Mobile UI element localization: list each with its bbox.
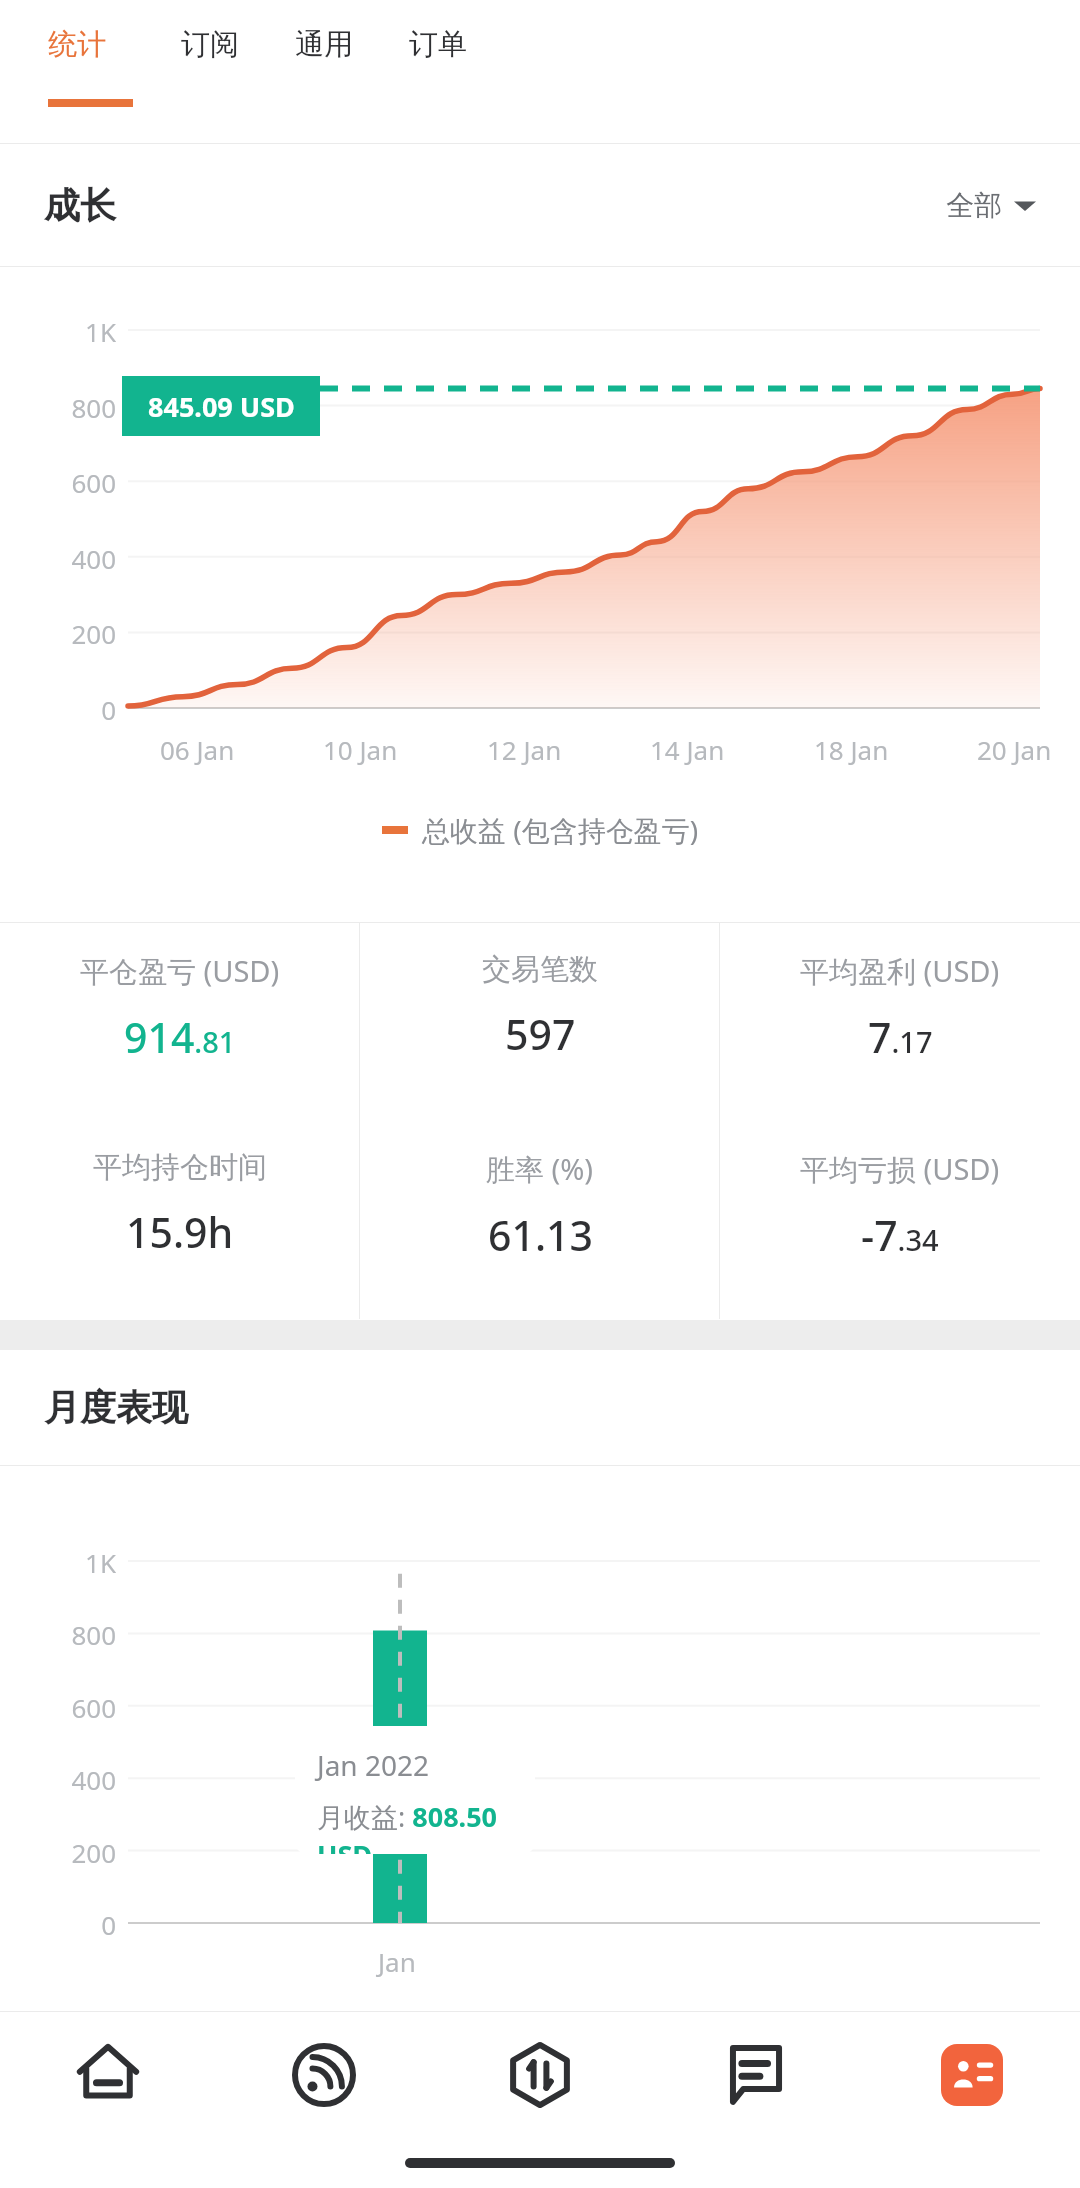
- staticText: 胜率 (%): [486, 1149, 594, 1189]
- staticText: 0: [30, 692, 116, 727]
- button[interactable]: 全部: [946, 188, 1036, 223]
- button[interactable]: Messages: [648, 2012, 864, 2137]
- staticText: 400: [30, 1762, 116, 1797]
- staticText: 月度表现: [44, 1385, 188, 1430]
- staticText: 交易笔数: [482, 951, 598, 988]
- staticText: 12 Jan: [487, 732, 562, 767]
- staticText: 通用: [295, 26, 353, 63]
- staticText: 1K: [30, 314, 116, 349]
- staticText: 平均盈利 (USD): [800, 951, 1000, 991]
- button[interactable]: 订阅: [177, 0, 243, 143]
- staticText: 06 Jan: [160, 732, 235, 767]
- button[interactable]: Profile: [864, 2012, 1080, 2137]
- staticText: 597: [505, 1006, 576, 1062]
- staticText: 600: [30, 465, 116, 500]
- staticText: 平均持仓时间: [93, 1149, 267, 1186]
- staticText: 统计: [48, 26, 106, 63]
- staticText: 18 Jan: [814, 732, 889, 767]
- staticText: Jan 2022: [317, 1746, 430, 1784]
- staticText: 600: [30, 1690, 116, 1725]
- staticText: 月收益: 808.50 USD: [317, 1798, 535, 1854]
- staticText: 订单: [409, 26, 467, 63]
- staticText: 总收益 (包含持仓盈亏): [422, 811, 699, 849]
- staticText: 15.9h: [126, 1204, 234, 1260]
- staticText: 0: [30, 1907, 116, 1942]
- staticText: 400: [30, 541, 116, 576]
- staticText: 61.13: [488, 1207, 593, 1263]
- staticText: 800: [30, 1617, 116, 1652]
- staticText: 14 Jan: [650, 732, 725, 767]
- staticText: 10 Jan: [323, 732, 398, 767]
- staticText: 1K: [30, 1545, 116, 1580]
- button[interactable]: 通用: [291, 0, 357, 143]
- button[interactable]: 订单: [405, 0, 471, 143]
- staticText: 20 Jan: [977, 732, 1052, 767]
- staticText: 平仓盈亏 (USD): [80, 951, 280, 991]
- button[interactable]: Signals: [216, 2012, 432, 2137]
- staticText: 914.81: [124, 1009, 236, 1065]
- staticText: 订阅: [181, 26, 239, 63]
- staticText: -7.34: [861, 1207, 939, 1263]
- staticText: 平均亏损 (USD): [800, 1149, 1000, 1189]
- button[interactable]: Trade: [432, 2012, 648, 2137]
- staticText: 全部: [946, 188, 1002, 223]
- staticText: Jan: [378, 1944, 416, 1979]
- staticText: 845.09 USD: [148, 388, 295, 425]
- staticText: 成长: [44, 183, 116, 228]
- staticText: 200: [30, 616, 116, 651]
- staticText: 7.17: [868, 1009, 933, 1065]
- button[interactable]: 统计: [44, 0, 133, 143]
- staticText: 200: [30, 1835, 116, 1870]
- button[interactable]: Home: [0, 2012, 216, 2137]
- staticText: 800: [30, 390, 116, 425]
